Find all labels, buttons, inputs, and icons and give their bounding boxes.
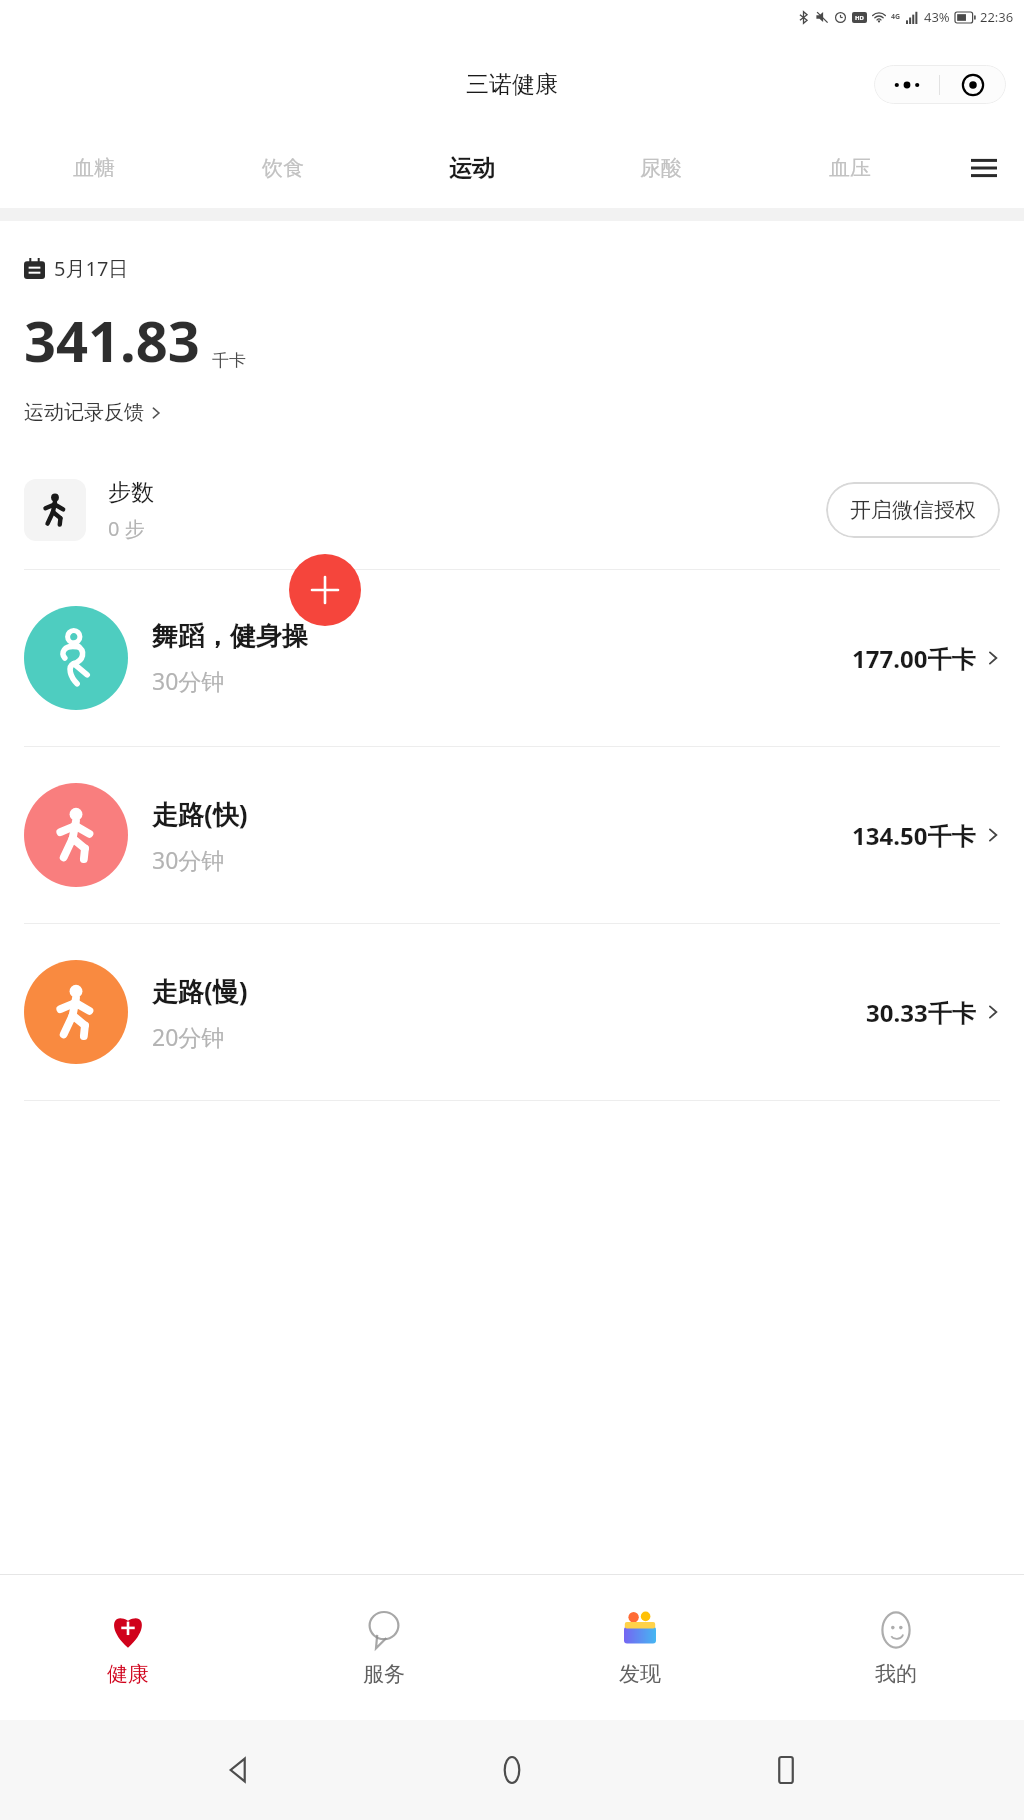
button[interactable]: 尿酸 [566,128,755,208]
staticText: 运动记录反馈 [24,400,144,425]
button[interactable]: 返回 [204,1735,274,1805]
staticText: 30分钟 [152,665,225,696]
button[interactable]: 运动记录反馈 [24,400,162,425]
button[interactable]: 走路(慢) [0,924,1024,1100]
staticText: 走路(慢) [152,973,248,1009]
staticText: 开启微信授权 [850,497,976,523]
button[interactable]: 健康 [0,1574,256,1720]
staticText: 43% [924,8,950,26]
button[interactable]: 服务 [256,1574,512,1720]
button[interactable]: 5月17日 [24,255,129,282]
button[interactable]: 步数 [0,451,1024,569]
staticText: 千卡 [212,350,246,371]
button[interactable]: 运动 [377,128,566,208]
staticText: 饮食 [262,155,304,181]
staticText: 20分钟 [152,1021,225,1052]
staticText: 5月17日 [54,255,129,282]
staticText: 血压 [829,155,871,181]
staticText: 三诺健康 [466,70,558,99]
staticText: 134.50千卡 [852,819,976,852]
staticText: 30分钟 [152,844,225,875]
staticText: 血糖 [73,155,115,181]
staticText: 服务 [363,1661,405,1687]
staticText: 4G [891,12,901,22]
button[interactable]: 发现 [512,1574,768,1720]
staticText: 步数 [108,478,154,507]
button[interactable]: 我的 [768,1574,1024,1720]
staticText: 运动 [449,154,495,183]
staticText: 走路(快) [152,796,248,832]
staticText: 22:36 [980,8,1014,26]
staticText: 发现 [619,1661,661,1687]
staticText: HD [855,14,864,22]
button[interactable]: 饮食 [188,128,377,208]
staticText: 341.83 [24,302,200,378]
staticText: 健康 [107,1661,149,1687]
staticText: 我的 [875,1661,917,1687]
staticText: 舞蹈，健身操 [152,620,308,653]
button[interactable]: 添加运动 [289,554,361,626]
button[interactable]: 菜单 [944,128,1024,208]
staticText: 尿酸 [640,155,682,181]
button[interactable]: 主屏幕 [477,1735,547,1805]
button[interactable]: 走路(快) [0,747,1024,923]
button[interactable]: 舞蹈，健身操 [0,570,1024,746]
button[interactable]: 开启微信授权 [826,482,1000,538]
staticText: 30.33千卡 [866,996,976,1029]
button[interactable]: 血糖 [0,128,188,208]
button[interactable]: 更多与胶囊菜单 [874,65,1006,104]
button[interactable]: 血压 [755,128,944,208]
staticText: 177.00千卡 [852,642,976,675]
staticText: 0 步 [108,515,145,542]
button[interactable]: 最近任务 [751,1735,821,1805]
